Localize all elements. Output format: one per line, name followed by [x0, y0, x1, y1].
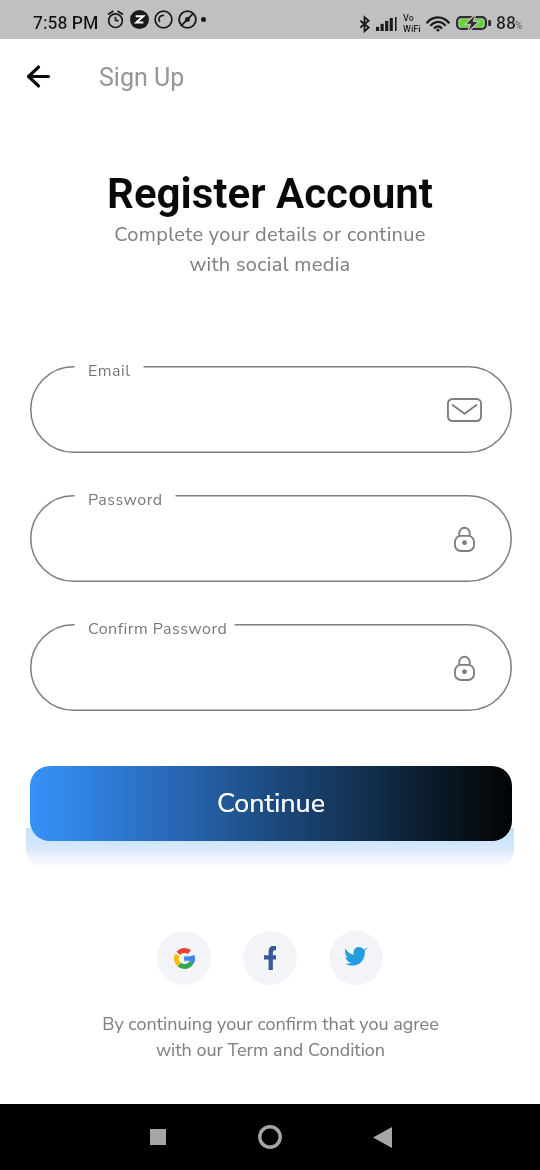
- staticText: Register Account: [107, 169, 433, 218]
- button[interactable]: Sign up with Twitter: [329, 931, 383, 985]
- staticText: Email: [88, 360, 131, 382]
- staticText: Confirm Password: [88, 618, 228, 640]
- button[interactable]: Back: [14, 52, 62, 100]
- staticText: %: [515, 20, 523, 32]
- button[interactable]: Password: [30, 495, 512, 582]
- button[interactable]: Sign up with Facebook: [243, 931, 297, 985]
- staticText: Sign Up: [99, 63, 185, 92]
- button[interactable]: Continue: [30, 766, 512, 841]
- button[interactable]: Email: [30, 366, 512, 453]
- staticText: Vo: [403, 13, 414, 24]
- staticText: 88: [496, 13, 516, 34]
- staticText: 7:58 PM: [33, 13, 99, 34]
- staticText: By continuing your confirm that you agre…: [102, 1012, 439, 1063]
- staticText: WiFi: [403, 24, 421, 35]
- button[interactable]: Home: [240, 1107, 300, 1167]
- button[interactable]: Recent apps: [128, 1107, 188, 1167]
- button[interactable]: Sign up with Google: [157, 931, 211, 985]
- staticText: Complete your details or continue with s…: [114, 221, 426, 278]
- staticText: Password: [88, 489, 163, 511]
- staticText: Continue: [217, 785, 326, 822]
- button[interactable]: Back: [352, 1107, 412, 1167]
- button[interactable]: Confirm Password: [30, 624, 512, 711]
